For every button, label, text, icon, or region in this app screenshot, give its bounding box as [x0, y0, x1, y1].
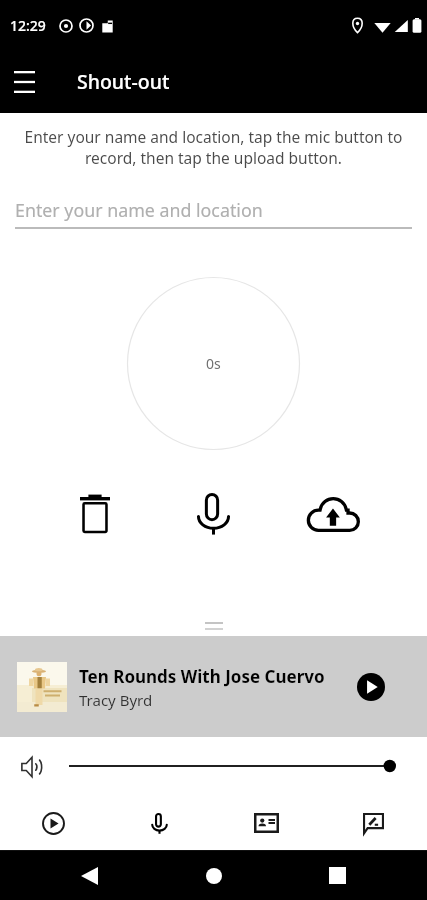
staticText: Enter your name and location, tap the mi…: [20, 126, 407, 169]
button[interactable]: [69, 755, 396, 777]
button[interactable]: Play: [349, 665, 393, 709]
button[interactable]: Play: [0, 795, 106, 851]
button[interactable]: Enter your name and location: [15, 198, 412, 229]
button[interactable]: Contacts: [213, 795, 320, 851]
button[interactable]: Messages: [320, 795, 427, 851]
button[interactable]: Record audio: [106, 795, 213, 851]
button[interactable]: Back: [66, 852, 113, 899]
staticText: Ten Rounds With Jose Cuervo: [79, 665, 325, 688]
staticText: Shout-out: [77, 68, 170, 95]
staticText: 12:29: [10, 16, 46, 35]
button[interactable]: Home: [190, 852, 237, 899]
button[interactable]: Recent apps: [314, 852, 361, 899]
staticText: Enter your name and location: [15, 198, 263, 222]
button[interactable]: Record: [185, 486, 242, 542]
button[interactable]: Delete recording: [66, 486, 123, 542]
staticText: Tracy Byrd: [79, 690, 153, 710]
button[interactable]: Volume: [21, 756, 43, 778]
button[interactable]: Upload: [306, 486, 363, 542]
button[interactable]: Open navigation menu: [1, 59, 47, 105]
staticText: 0s: [206, 354, 221, 373]
